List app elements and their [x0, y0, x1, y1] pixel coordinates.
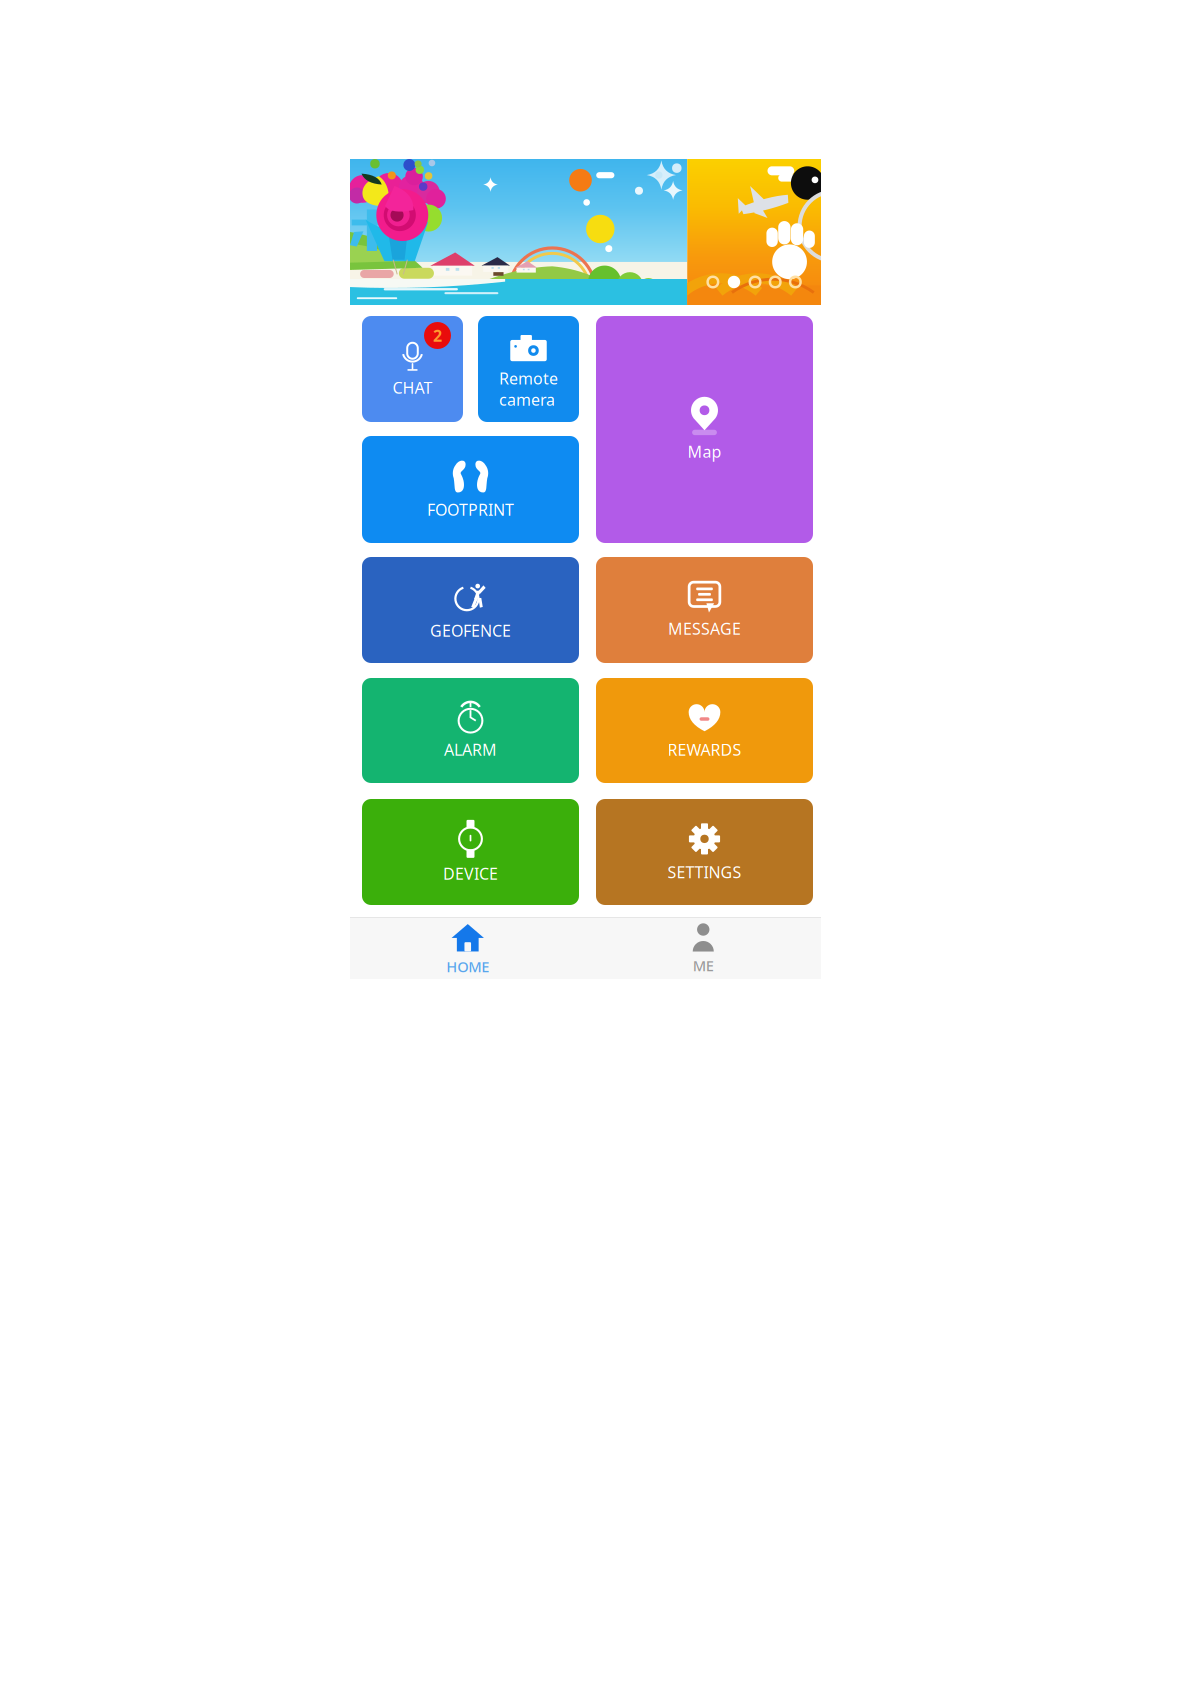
staticText: ME: [693, 956, 714, 975]
staticText: REWARDS: [667, 739, 741, 760]
button[interactable]: ME: [585, 922, 821, 975]
button[interactable]: HOME: [350, 921, 585, 976]
staticText: Map: [687, 441, 721, 462]
staticText: GEOFENCE: [430, 620, 511, 641]
staticText: DEVICE: [443, 863, 498, 884]
staticText: MESSAGE: [668, 618, 741, 639]
staticText: ALARM: [444, 739, 497, 760]
button[interactable]: ALARM: [362, 678, 579, 783]
staticText: HOME: [446, 957, 489, 976]
button[interactable]: Map: [596, 316, 813, 543]
button[interactable]: MESSAGE: [596, 557, 813, 663]
staticText: FOOTPRINT: [427, 499, 514, 520]
button[interactable]: REWARDS: [596, 678, 813, 783]
button[interactable]: CHAT: [362, 316, 463, 422]
button[interactable]: FOOTPRINT: [362, 436, 579, 543]
staticText: Remote camera: [499, 368, 558, 410]
staticText: 2: [433, 325, 442, 346]
button[interactable]: GEOFENCE: [362, 557, 579, 663]
button[interactable]: Remote camera: [478, 316, 579, 422]
staticText: CHAT: [392, 377, 432, 398]
button[interactable]: DEVICE: [362, 799, 579, 905]
button[interactable]: SETTINGS: [596, 799, 813, 905]
staticText: SETTINGS: [667, 861, 741, 883]
